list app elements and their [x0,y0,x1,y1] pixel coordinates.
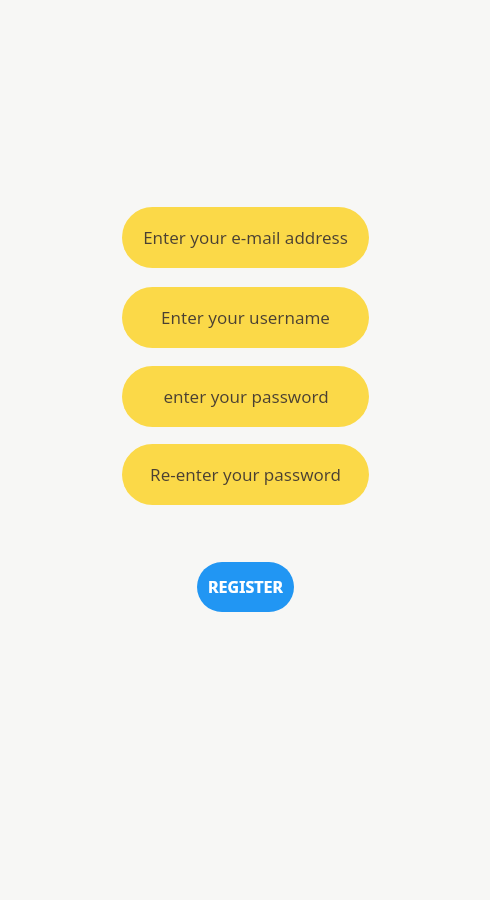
button[interactable]: enter your password [122,366,369,427]
staticText: Re-enter your password [150,463,341,486]
button[interactable]: Re-enter your password [122,444,369,505]
staticText: Enter your e-mail address [143,226,348,249]
button[interactable]: Enter your e-mail address [122,207,369,268]
button[interactable]: REGISTER [197,562,294,612]
staticText: enter your password [163,385,329,408]
staticText: Enter your username [161,306,330,329]
button[interactable]: Enter your username [122,287,369,348]
staticText: REGISTER [208,576,283,598]
